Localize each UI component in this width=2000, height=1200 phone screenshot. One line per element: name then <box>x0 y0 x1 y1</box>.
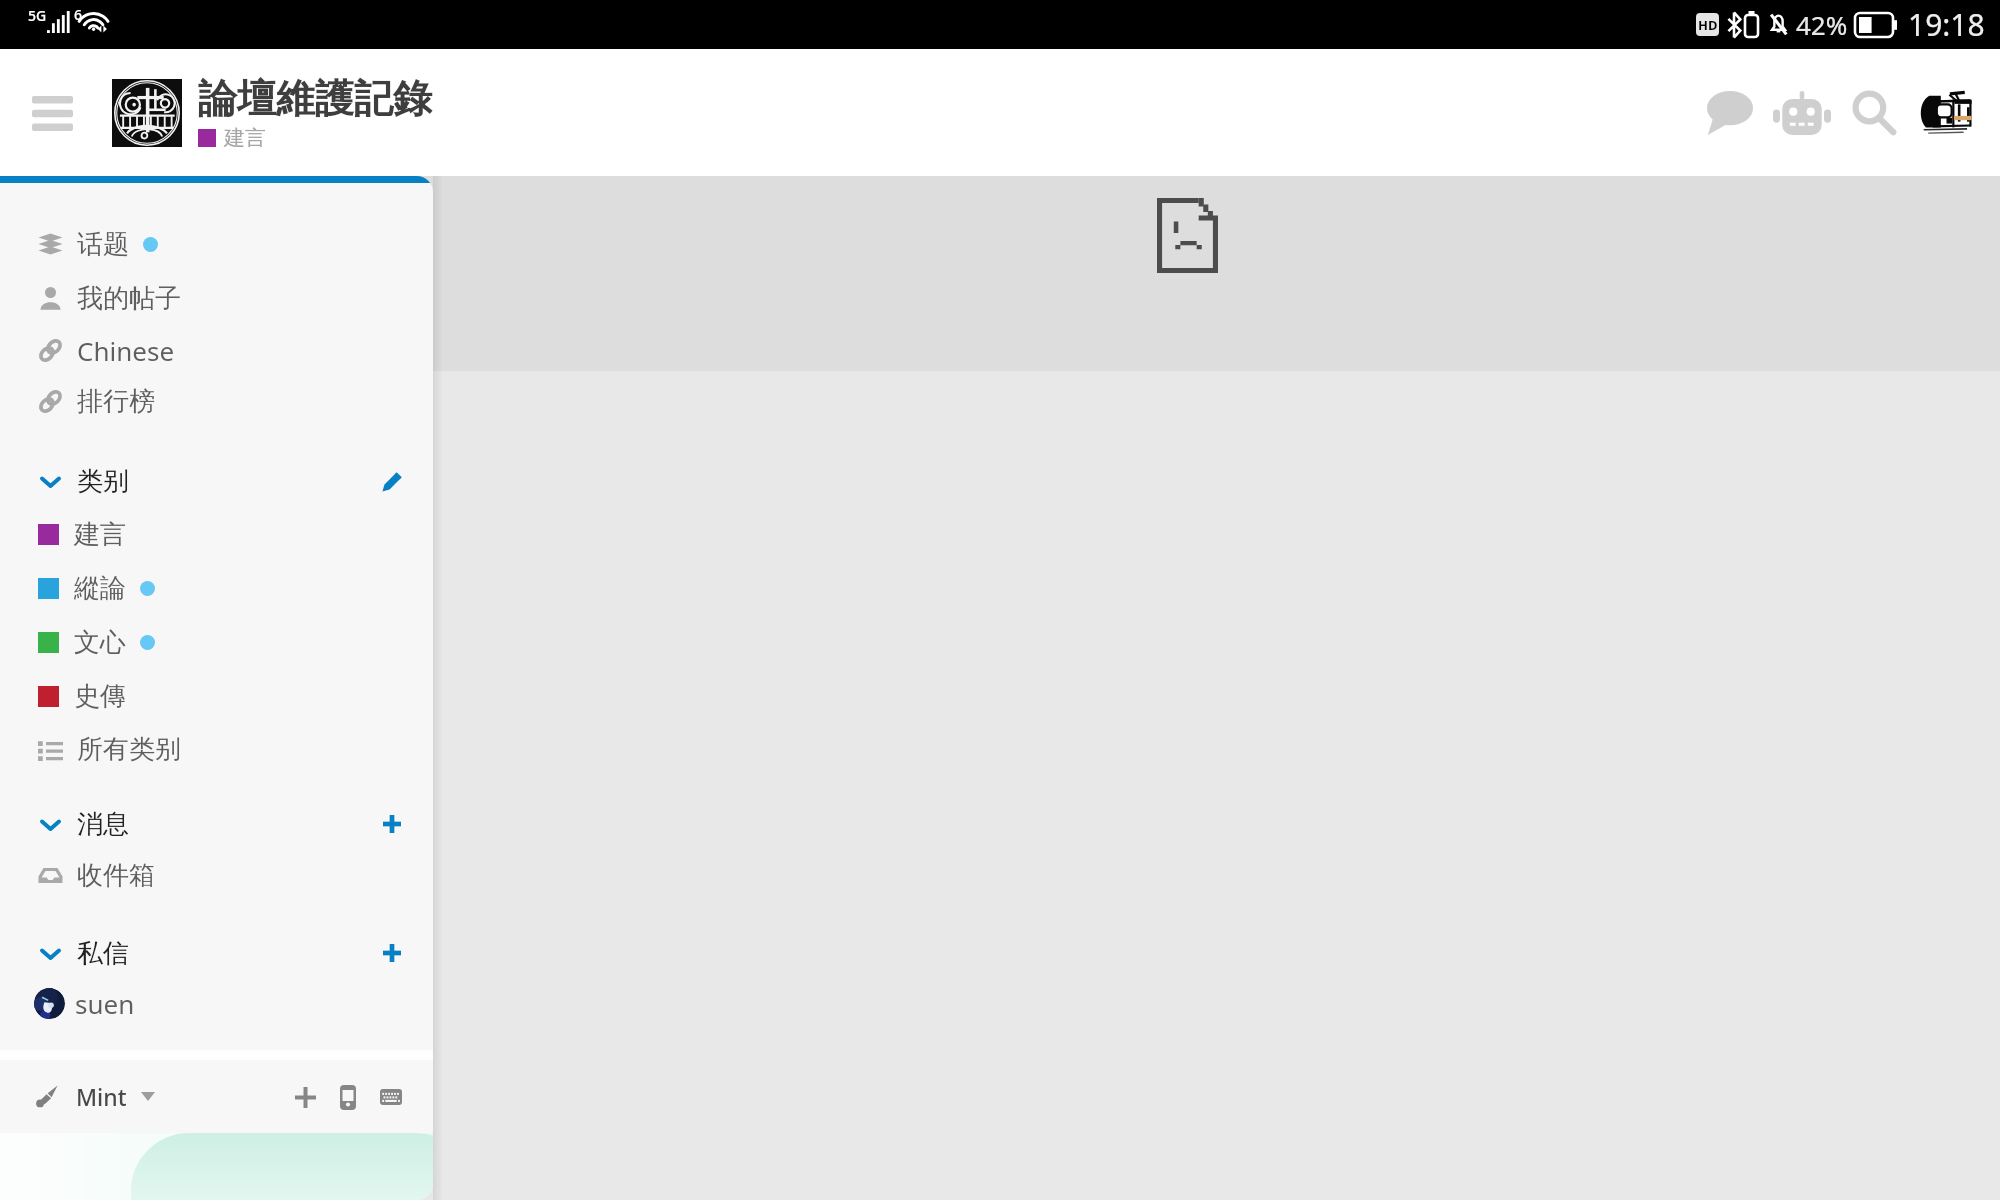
staticText: 排行榜 <box>77 385 155 418</box>
staticText: 5G <box>28 6 47 25</box>
button[interactable]: Search <box>1838 77 1910 149</box>
staticText: 消息 <box>77 808 129 841</box>
button[interactable]: 收件箱 <box>0 849 433 902</box>
staticText: 42% <box>1796 7 1848 42</box>
staticText: 私信 <box>77 937 129 970</box>
button[interactable]: 建言 <box>0 507 433 561</box>
button[interactable]: 消息 <box>0 799 433 849</box>
button[interactable]: 私信 <box>0 929 433 977</box>
staticText: HD <box>1698 16 1718 34</box>
button[interactable]: 所有类别 <box>0 723 433 776</box>
staticText: suen <box>75 986 135 1021</box>
staticText: 縱論 <box>74 572 126 605</box>
button[interactable]: 话题 <box>0 218 433 271</box>
staticText: 建言 <box>224 125 266 151</box>
button[interactable]: 史傳 <box>0 669 433 723</box>
button[interactable]: 类别 <box>0 455 433 507</box>
button[interactable]: Profile <box>1910 77 1982 149</box>
staticText: 6 <box>74 5 83 24</box>
staticText: 话题 <box>77 228 129 261</box>
staticText: 建言 <box>74 518 126 551</box>
button[interactable]: Add <box>284 1076 326 1118</box>
staticText: 史傳 <box>74 680 126 713</box>
staticText: 我的帖子 <box>77 282 181 315</box>
button[interactable]: Bot <box>1766 77 1838 149</box>
button[interactable]: Edit <box>368 457 416 505</box>
button[interactable]: 排行榜 <box>0 375 433 428</box>
staticText: Chinese <box>77 333 175 368</box>
button[interactable]: Add <box>368 929 416 977</box>
button[interactable]: Open navigation menu <box>24 85 80 141</box>
staticText: 論壇維護記錄 <box>198 74 432 123</box>
staticText: 文心 <box>74 626 126 659</box>
button[interactable]: Messages <box>1694 77 1766 149</box>
staticText: 19:18 <box>1908 4 1985 45</box>
button[interactable]: 我的帖子 <box>0 271 433 325</box>
staticText: 收件箱 <box>77 859 155 892</box>
button[interactable]: Keyboard <box>370 1076 412 1118</box>
button[interactable]: 縱論 <box>0 561 433 615</box>
staticText: 所有类别 <box>77 733 181 766</box>
staticText: Mint <box>76 1081 127 1112</box>
staticText: 类别 <box>77 465 129 498</box>
button[interactable]: suen <box>0 977 433 1030</box>
button[interactable]: 文心 <box>0 615 433 669</box>
button[interactable]: Add <box>368 800 416 848</box>
button[interactable]: Mobile preview <box>327 1076 369 1118</box>
button[interactable]: Theme <box>35 1085 58 1108</box>
button[interactable]: Chinese <box>0 325 433 375</box>
